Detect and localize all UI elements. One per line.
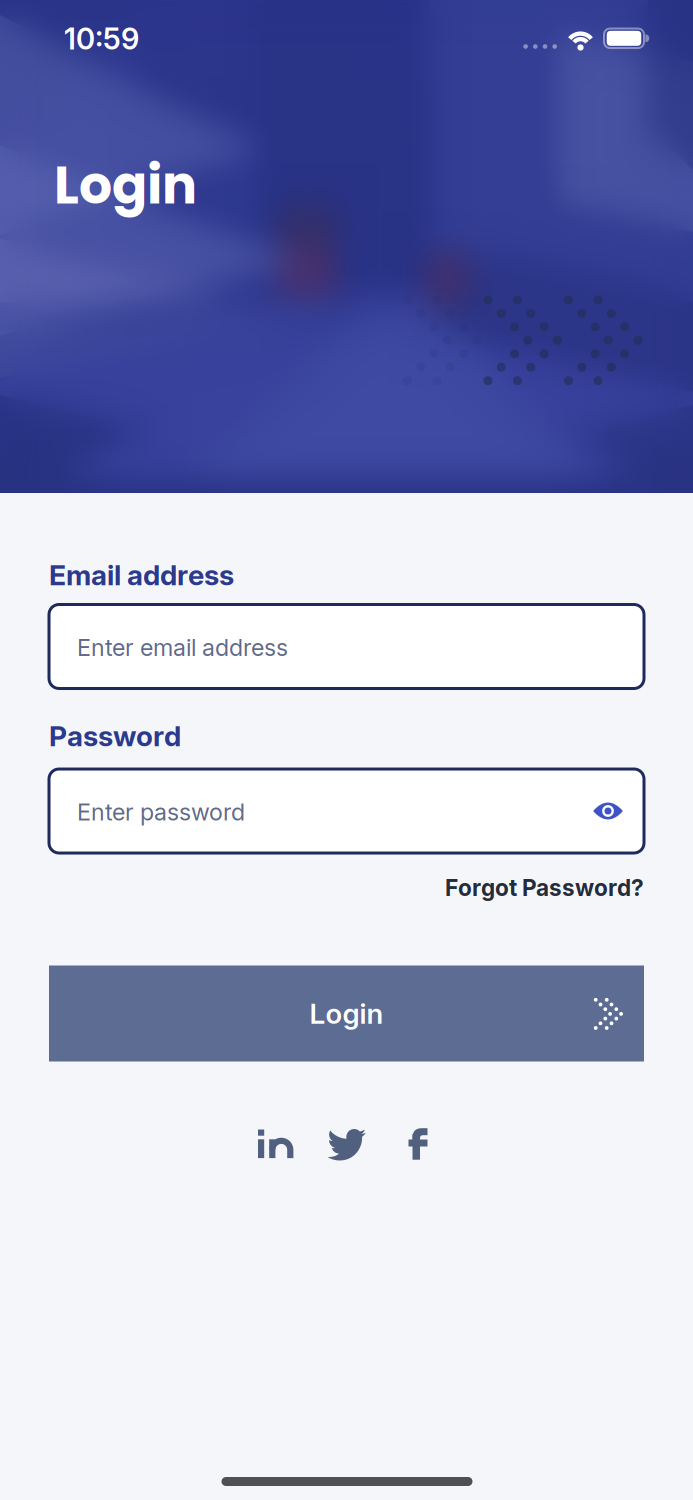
staticText: Login <box>54 149 197 222</box>
staticText: Enter password <box>77 798 245 826</box>
staticText: Email address <box>49 558 234 592</box>
staticText: Password <box>49 719 181 753</box>
staticText: Login <box>309 997 383 1030</box>
staticText: Enter email address <box>77 633 288 662</box>
staticText: Forgot Password? <box>445 874 644 901</box>
staticText: 10:59 <box>64 21 139 56</box>
